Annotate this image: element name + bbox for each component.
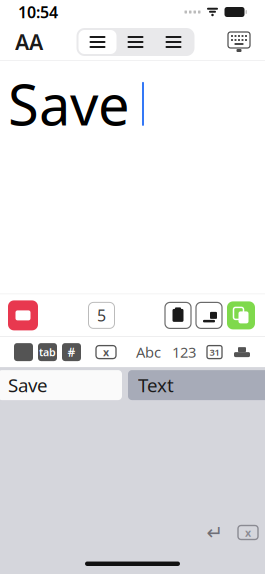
button[interactable]: Align right: [154, 30, 192, 54]
button[interactable]: 5: [88, 302, 114, 328]
button[interactable]: #: [62, 343, 81, 361]
button[interactable]: 123: [172, 342, 196, 362]
staticText: ↵: [206, 521, 223, 544]
staticText: Text: [138, 373, 174, 397]
staticText: #: [67, 344, 75, 360]
button[interactable]: Text: [128, 370, 265, 400]
button[interactable]: Delete: [93, 342, 119, 362]
staticText: Abc: [136, 342, 161, 362]
button[interactable]: Save: [0, 370, 122, 400]
staticText: AA: [15, 28, 43, 56]
staticText: 10:54: [18, 1, 58, 23]
staticText: x: [103, 345, 109, 359]
button[interactable]: Share: [196, 302, 222, 328]
button[interactable]: tab: [38, 343, 57, 361]
button[interactable]: Align center: [116, 30, 154, 54]
button[interactable]: Hide keyboard: [221, 27, 257, 57]
button[interactable]: Space: [14, 343, 33, 361]
button[interactable]: Paste: [165, 302, 191, 328]
staticText: 31: [209, 346, 219, 358]
button[interactable]: Abc: [136, 342, 161, 362]
staticText: 123: [172, 342, 196, 362]
button[interactable]: Insert: [233, 345, 251, 359]
button[interactable]: Text style: [8, 27, 50, 57]
button[interactable]: Return: [201, 519, 229, 545]
button[interactable]: Align left: [78, 30, 116, 54]
staticText: x: [245, 525, 251, 540]
staticText: Save: [8, 373, 48, 397]
staticText: 5: [97, 305, 106, 326]
button[interactable]: Date: [207, 346, 222, 359]
button[interactable]: Eraser: [8, 300, 38, 330]
button[interactable]: Delete: [233, 519, 263, 545]
button[interactable]: Copy: [227, 301, 255, 329]
staticText: Save: [8, 67, 130, 141]
staticText: tab: [39, 345, 56, 359]
